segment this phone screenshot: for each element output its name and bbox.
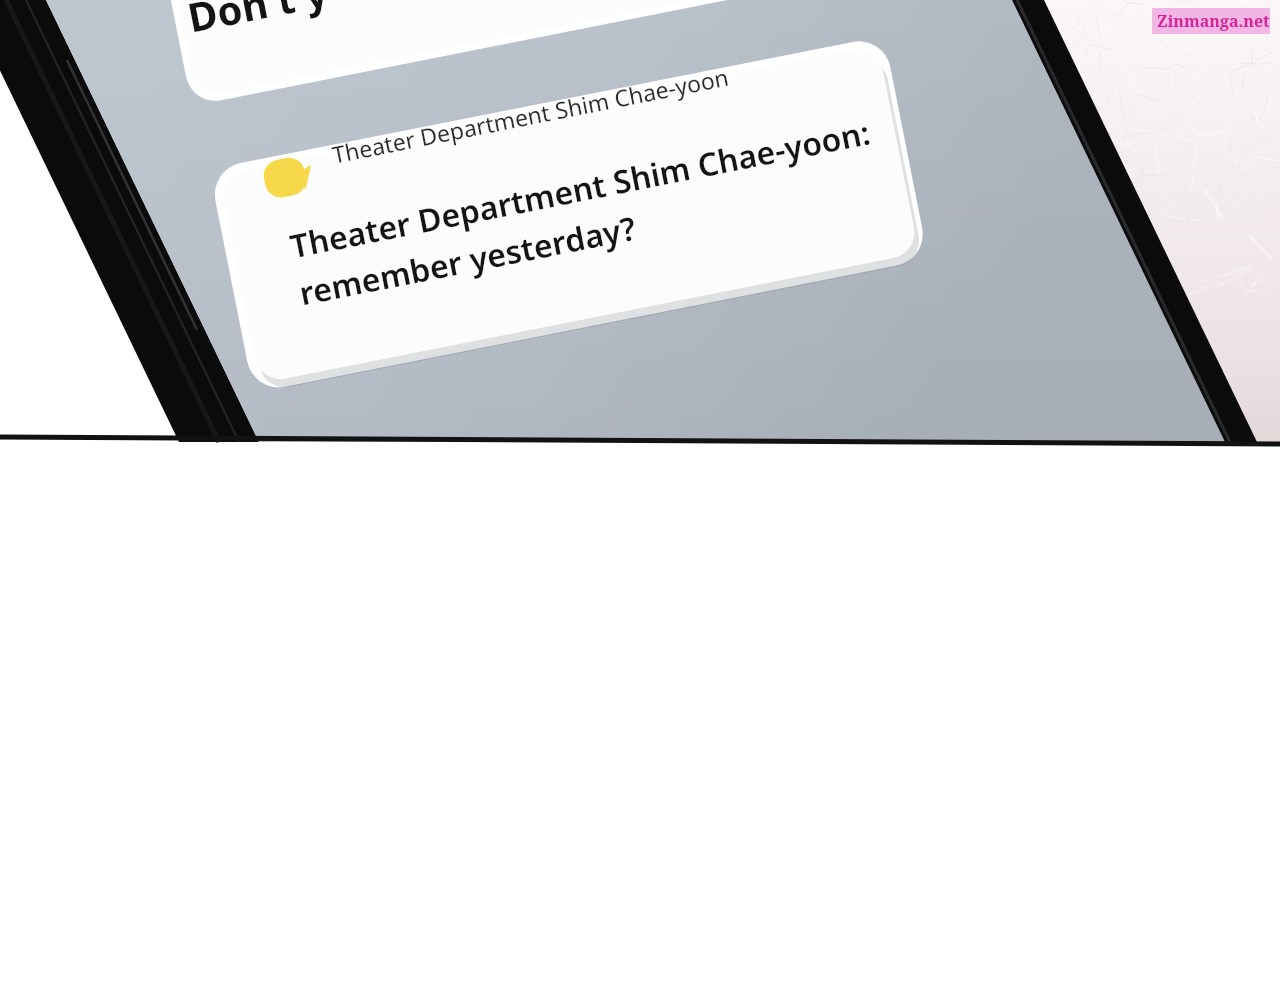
button[interactable]: Notification from Theater Department Shi… — [0, 0, 700, 200]
